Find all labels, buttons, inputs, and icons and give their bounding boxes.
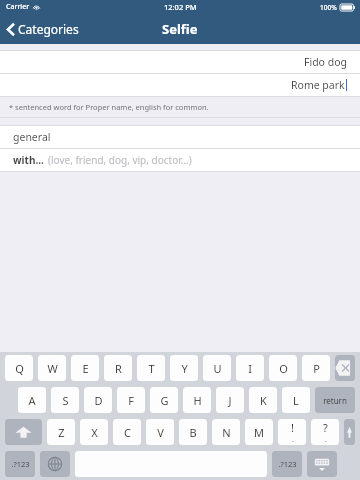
button[interactable]: U (203, 355, 231, 381)
staticText: E (82, 361, 89, 376)
staticText: Y (181, 361, 188, 376)
button[interactable]: ? (311, 419, 339, 445)
staticText: .?123 (278, 459, 297, 469)
button[interactable]: E (71, 355, 99, 381)
button[interactable]: B (179, 419, 207, 445)
button[interactable]: N (212, 419, 240, 445)
staticText: G (160, 393, 169, 408)
staticText: W (47, 361, 58, 376)
button[interactable]: Y (170, 355, 198, 381)
staticText: return (323, 395, 347, 406)
staticText: .?123 (11, 459, 30, 469)
staticText: Fido dog (304, 55, 347, 69)
staticText: A (28, 393, 36, 408)
button[interactable]: .?123 (5, 451, 35, 477)
button[interactable]: S (51, 387, 79, 413)
button[interactable]: Categories (5, 17, 81, 41)
staticText: general (13, 130, 51, 144)
staticText: * sentenced word for Proper name, englis… (9, 102, 209, 112)
button[interactable]: .?123 (272, 451, 302, 477)
staticText: Rome park (291, 78, 345, 92)
staticText: (love, friend, dog, vip, doctor...) (48, 153, 192, 167)
button[interactable]: Backspace (335, 355, 355, 381)
button[interactable]: Shift (344, 419, 355, 445)
staticText: . (292, 435, 294, 444)
button[interactable]: A (18, 387, 46, 413)
staticText: Q (15, 361, 24, 376)
button[interactable]: Fido dog (0, 51, 360, 73)
staticText: L (293, 393, 299, 408)
button[interactable]: I (236, 355, 264, 381)
button[interactable]: K (249, 387, 277, 413)
button[interactable]: general (0, 126, 360, 148)
staticText: I (248, 361, 252, 376)
button[interactable]: V (146, 419, 174, 445)
staticText: Categories (18, 21, 79, 37)
staticText: Carrier (6, 2, 30, 12)
button[interactable]: O (269, 355, 297, 381)
staticText: J (228, 393, 232, 408)
staticText: T (148, 361, 155, 376)
button[interactable]: ! (278, 419, 306, 445)
staticText: Z (58, 425, 65, 440)
staticText: U (213, 361, 222, 376)
button[interactable]: J (216, 387, 244, 413)
staticText: H (193, 393, 202, 408)
staticText: N (222, 425, 231, 440)
staticText: C (124, 425, 131, 440)
staticText: R (115, 361, 122, 376)
staticText: S (62, 393, 69, 408)
button[interactable]: with... (0, 149, 360, 171)
staticText: F (128, 393, 134, 408)
button[interactable]: Q (5, 355, 33, 381)
button[interactable]: Switch keyboard (40, 451, 70, 477)
button[interactable]: D (84, 387, 112, 413)
button[interactable]: C (113, 419, 141, 445)
button[interactable]: G (150, 387, 178, 413)
button[interactable]: F (117, 387, 145, 413)
staticText: M (254, 425, 264, 440)
staticText: 12:02 PM (164, 2, 197, 12)
staticText: Selfie (162, 20, 198, 38)
button[interactable]: L (282, 387, 310, 413)
staticText: K (260, 393, 267, 408)
staticText: P (313, 361, 320, 376)
button[interactable]: Hide keyboard (307, 451, 337, 477)
staticText: ? (323, 420, 328, 435)
button[interactable]: Rome park (0, 74, 360, 96)
button[interactable]: T (137, 355, 165, 381)
button[interactable]: return (315, 387, 355, 413)
button[interactable]: H (183, 387, 211, 413)
staticText: O (279, 361, 288, 376)
staticText: with... (13, 153, 44, 167)
button[interactable]: R (104, 355, 132, 381)
button[interactable]: Shift (5, 419, 42, 445)
staticText: . (325, 435, 327, 444)
button[interactable]: X (80, 419, 108, 445)
staticText: X (91, 425, 98, 440)
button[interactable]: P (302, 355, 330, 381)
staticText: V (157, 425, 164, 440)
button[interactable]: Z (47, 419, 75, 445)
button[interactable]: M (245, 419, 273, 445)
staticText: B (189, 425, 197, 440)
button[interactable]: W (38, 355, 66, 381)
staticText: 100% (320, 3, 337, 12)
staticText: ! (291, 420, 294, 435)
staticText: D (94, 393, 103, 408)
